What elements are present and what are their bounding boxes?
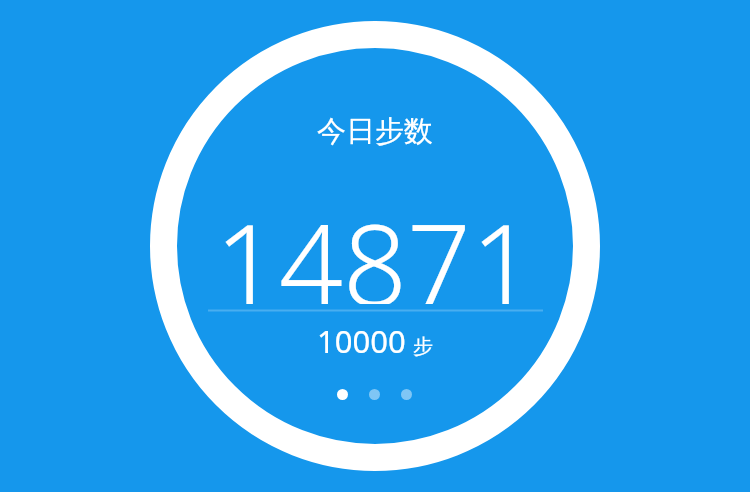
- button[interactable]: Page 2: [369, 389, 380, 400]
- staticText: 10000: [317, 320, 406, 362]
- button[interactable]: 10000: [255, 320, 495, 362]
- button[interactable]: Page 1, current: [337, 389, 348, 400]
- button[interactable]: 14871: [175, 186, 575, 304]
- staticText: 今日步数: [317, 113, 433, 150]
- staticText: 步: [413, 334, 433, 359]
- button[interactable]: Page 3: [401, 389, 412, 400]
- button[interactable]: 今日步数: [275, 112, 475, 150]
- staticText: 14871: [215, 186, 535, 304]
